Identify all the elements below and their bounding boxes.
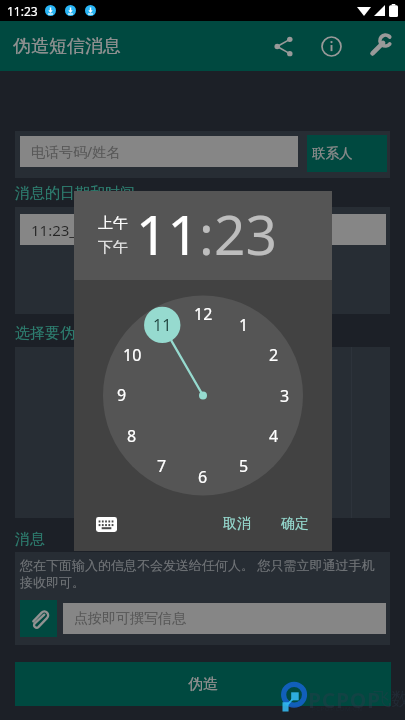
staticText: 伪造短信消息 <box>13 35 259 58</box>
button[interactable]: 8 <box>118 424 146 448</box>
staticText: 7 <box>157 455 167 477</box>
staticText: 2 <box>269 344 279 366</box>
button[interactable]: 点按即可撰写信息 <box>74 603 375 634</box>
staticText: 电话号码/姓名 <box>31 142 121 161</box>
button[interactable]: 12 <box>189 302 217 326</box>
staticText: 您在下面输入的信息不会发送给任何人。 您只需立即通过手机接收即可。 <box>20 556 386 591</box>
staticText: 下午 <box>98 238 128 257</box>
staticText: 8 <box>127 425 137 447</box>
button[interactable]: 9 <box>108 383 136 407</box>
button[interactable]: 确定 <box>271 509 319 539</box>
staticText: 确定 <box>281 515 309 533</box>
button[interactable]: 2 <box>260 343 288 367</box>
button[interactable]: 4 <box>260 424 288 448</box>
button[interactable]: 电话号码/姓名 <box>31 136 287 167</box>
staticText: 消息 <box>15 530 45 549</box>
button[interactable]: 取消 <box>213 509 261 539</box>
staticText: 消息的日期和时间 <box>15 184 135 203</box>
button[interactable]: 11:23_ <box>31 214 375 245</box>
staticText: 11 <box>136 196 199 271</box>
staticText: 10 <box>123 344 142 366</box>
staticText: 11 <box>153 314 172 336</box>
staticText: 11:23_ <box>31 220 77 240</box>
button[interactable]: 伪造 <box>15 662 391 706</box>
button[interactable]: 3 <box>271 384 299 408</box>
button[interactable]: Share <box>259 22 307 70</box>
button[interactable]: 7 <box>148 454 176 478</box>
button[interactable]: Switch to keyboard input <box>96 517 117 532</box>
staticText: 点按即可撰写信息 <box>74 610 186 628</box>
staticText: 选择要伪造的消息类型 <box>15 324 165 343</box>
staticText: 6 <box>198 466 208 488</box>
staticText: 伪造 <box>188 675 218 694</box>
staticText: PCPOP <box>308 686 381 715</box>
staticText: 联系人 <box>312 145 353 162</box>
staticText: 5 <box>239 455 249 477</box>
button[interactable]: 下午 <box>98 238 128 257</box>
button[interactable]: Attach file <box>20 600 57 637</box>
button[interactable]: 23 <box>214 196 277 271</box>
button[interactable]: 11 <box>148 313 176 337</box>
staticText: 4 <box>269 425 279 447</box>
staticText: 12 <box>194 303 213 325</box>
staticText: 23 <box>214 196 277 271</box>
staticText: 3 <box>280 385 290 407</box>
staticText: : <box>199 196 214 271</box>
staticText: 1 <box>239 314 249 336</box>
staticText: 取消 <box>223 515 251 533</box>
button[interactable]: 6 <box>189 465 217 489</box>
staticText: 飞数 <box>373 688 405 711</box>
staticText: PCPOP.COM.CN <box>312 705 363 713</box>
button[interactable]: 11 <box>136 196 199 271</box>
button[interactable]: Settings <box>355 21 405 71</box>
staticText: 上午 <box>98 214 128 233</box>
button[interactable]: Info <box>307 22 355 70</box>
staticText: 9 <box>117 384 127 406</box>
button[interactable]: 5 <box>230 454 258 478</box>
button[interactable]: 1 <box>230 313 258 337</box>
staticText: 11:23 <box>7 3 38 19</box>
button[interactable]: 10 <box>118 343 146 367</box>
button[interactable]: 上午 <box>98 214 128 233</box>
button[interactable]: 联系人 <box>307 135 387 172</box>
